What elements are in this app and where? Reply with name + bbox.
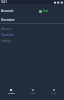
- staticText: Home: [8, 92, 15, 95]
- staticText: Account: [1, 9, 14, 13]
- button[interactable]: More: [43, 84, 64, 100]
- button[interactable]: Cards: [22, 84, 43, 100]
- staticText: Balance: [1, 27, 12, 31]
- staticText: Payments: [1, 33, 14, 37]
- staticText: More: [51, 92, 57, 95]
- staticText: 9:41: [1, 0, 7, 4]
- staticText: Settings: [1, 39, 12, 43]
- button[interactable]: Home: [0, 84, 22, 100]
- staticText: Overview: [1, 18, 15, 22]
- staticText: Live: [43, 9, 49, 13]
- button[interactable]: Live: [39, 9, 49, 13]
- staticText: Cards: [30, 92, 36, 95]
